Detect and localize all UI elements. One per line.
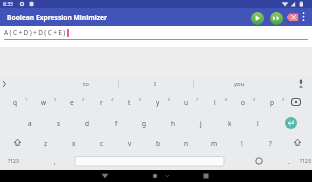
staticText: , xyxy=(54,157,56,166)
button[interactable]: 3 xyxy=(69,91,97,107)
button[interactable]: j xyxy=(187,115,215,131)
staticText: h xyxy=(171,119,176,128)
button[interactable]: 0 xyxy=(269,91,297,107)
staticText: 7 xyxy=(196,97,199,102)
button[interactable]: I xyxy=(141,76,169,92)
staticText: q xyxy=(13,98,17,107)
button[interactable]: i xyxy=(201,94,229,110)
button[interactable]: ! xyxy=(228,135,256,151)
staticText: d xyxy=(85,119,89,128)
button[interactable]: o xyxy=(229,94,257,110)
staticText: v xyxy=(128,139,132,148)
button[interactable]: 6 xyxy=(155,91,183,107)
button[interactable]: 2 xyxy=(41,91,69,107)
button[interactable]: 4 xyxy=(98,91,126,107)
button[interactable]: 5 xyxy=(126,91,154,107)
staticText: I xyxy=(154,80,157,88)
button[interactable]: t xyxy=(115,94,143,110)
button[interactable]: k xyxy=(216,115,244,131)
button[interactable]: ?123 xyxy=(0,153,27,169)
staticText: z xyxy=(44,139,48,148)
staticText: y xyxy=(156,98,160,107)
button[interactable] xyxy=(270,12,283,25)
staticText: 1 xyxy=(25,97,28,102)
staticText: 3 xyxy=(82,97,85,102)
staticText: r xyxy=(100,98,103,107)
button[interactable]: h xyxy=(159,115,187,131)
button[interactable]: to xyxy=(72,76,100,92)
button[interactable]: c xyxy=(88,135,116,151)
button[interactable]: b xyxy=(144,135,172,151)
button[interactable] xyxy=(251,12,264,25)
button[interactable]: f xyxy=(102,115,130,131)
staticText: l xyxy=(257,119,259,128)
staticText: k xyxy=(228,119,232,128)
staticText: 2 xyxy=(54,97,57,102)
staticText: a xyxy=(28,119,32,128)
button[interactable]: x xyxy=(60,135,88,151)
staticText: c xyxy=(100,139,104,148)
staticText: s xyxy=(57,119,61,128)
staticText: you xyxy=(234,80,245,88)
button[interactable]: a xyxy=(16,115,44,131)
staticText: ?123 xyxy=(300,158,311,165)
button[interactable]: s xyxy=(45,115,73,131)
staticText: Boolean Expression Minimizer xyxy=(7,13,107,22)
staticText: 6 xyxy=(168,97,171,102)
button[interactable]: 1 xyxy=(12,91,40,107)
button[interactable]: q xyxy=(1,94,29,110)
staticText: n xyxy=(184,139,189,148)
button[interactable]: ?123 xyxy=(291,153,312,169)
button[interactable]: 9 xyxy=(240,91,268,107)
staticText: u xyxy=(184,98,189,107)
staticText: to xyxy=(83,80,89,88)
button[interactable]: 8 xyxy=(212,91,240,107)
staticText: ?123 xyxy=(8,158,19,165)
staticText: ! xyxy=(241,139,243,148)
button[interactable]: you xyxy=(225,76,253,92)
button[interactable]: 7 xyxy=(183,91,211,107)
staticText: e xyxy=(70,98,74,107)
staticText: 0 xyxy=(282,97,285,102)
button[interactable]: y xyxy=(144,94,172,110)
staticText: g xyxy=(142,119,146,128)
staticText: 9 xyxy=(253,97,256,102)
staticText: w xyxy=(41,98,47,107)
staticText: A(C+D)+D(C+E) xyxy=(4,28,67,37)
staticText: t xyxy=(128,98,131,107)
staticText: m xyxy=(211,139,218,148)
staticText: 4 xyxy=(111,97,114,102)
button[interactable]: , xyxy=(41,153,69,169)
button[interactable]: g xyxy=(130,115,158,131)
staticText: b xyxy=(156,139,160,148)
button[interactable]: r xyxy=(87,94,115,110)
staticText: 8:33 xyxy=(3,1,13,8)
button[interactable]: d xyxy=(73,115,101,131)
button[interactable]: ? xyxy=(256,135,284,151)
button[interactable] xyxy=(299,12,308,25)
button[interactable]: n xyxy=(172,135,200,151)
staticText: 5 xyxy=(139,97,142,102)
staticText: j xyxy=(200,119,202,128)
button[interactable]: z xyxy=(32,135,60,151)
button[interactable]: l xyxy=(244,115,272,131)
button[interactable]: v xyxy=(116,135,144,151)
staticText: f xyxy=(115,119,118,128)
button[interactable]: u xyxy=(172,94,200,110)
button[interactable]: m xyxy=(200,135,228,151)
staticText: . xyxy=(288,157,290,166)
staticText: o xyxy=(241,98,245,107)
button[interactable]: w xyxy=(30,94,58,110)
staticText: i xyxy=(214,98,216,107)
staticText: x xyxy=(72,139,76,148)
button[interactable]: p xyxy=(258,94,286,110)
button[interactable] xyxy=(286,13,299,22)
staticText: ? xyxy=(269,139,272,148)
button[interactable]: . xyxy=(275,153,303,169)
staticText: p xyxy=(270,98,274,107)
button[interactable]: e xyxy=(58,94,86,110)
staticText: 8 xyxy=(225,97,228,102)
